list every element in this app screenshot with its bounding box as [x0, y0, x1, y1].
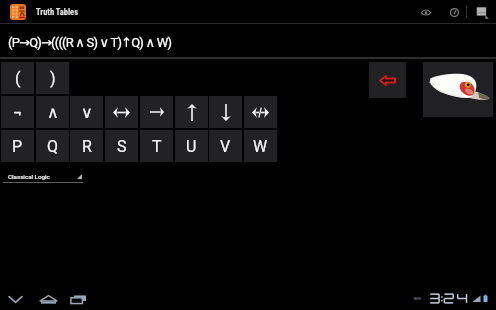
button[interactable]: Status: [413, 291, 488, 305]
button[interactable]: exclusive or: [244, 96, 277, 128]
staticText: P: [12, 137, 23, 156]
button[interactable]: S: [105, 130, 138, 162]
staticText: W: [253, 137, 268, 156]
staticText: Classical Logic: [8, 173, 50, 180]
button[interactable]: Recent apps: [66, 287, 90, 310]
button[interactable]: equivalence: [105, 96, 138, 128]
staticText: U: [186, 137, 197, 156]
button[interactable]: Home: [36, 287, 60, 310]
staticText: (P→Q)→((((R ∧ S) ∨ T)↑Q) ∧ W): [8, 35, 172, 50]
button[interactable]: ): [36, 62, 69, 94]
button[interactable]: T: [140, 130, 173, 162]
button[interactable]: (P→Q)→((((R ∧ S) ∨ T)↑Q) ∧ W): [0, 26, 278, 59]
button[interactable]: U: [175, 130, 208, 162]
button[interactable]: W: [244, 130, 277, 162]
button[interactable]: Truth Tables: [0, 0, 496, 23]
staticText: ¬: [13, 103, 22, 122]
staticText: V: [220, 137, 231, 156]
button[interactable]: History: [443, 1, 465, 23]
staticText: R: [82, 137, 92, 156]
staticText: Q: [47, 137, 59, 156]
button[interactable]: More options: [471, 1, 493, 23]
staticText: Truth Tables: [36, 7, 79, 17]
button[interactable]: Back: [3, 287, 27, 310]
staticText: T: [152, 137, 162, 156]
button[interactable]: Result image: [423, 62, 493, 117]
staticText: ∨: [81, 103, 93, 122]
button[interactable]: P: [1, 130, 34, 162]
button[interactable]: Show truth table: [415, 1, 437, 23]
button[interactable]: or: [70, 96, 103, 128]
staticText: (: [15, 69, 21, 88]
button[interactable]: (: [1, 62, 34, 94]
button[interactable]: not: [1, 96, 34, 128]
button[interactable]: nor: [209, 96, 242, 128]
button[interactable]: Q: [36, 130, 69, 162]
button[interactable]: Classical Logic: [3, 170, 83, 183]
button[interactable]: and: [36, 96, 69, 128]
staticText: ): [50, 69, 56, 88]
button[interactable]: Backspace: [369, 62, 406, 98]
button[interactable]: V: [209, 130, 242, 162]
button[interactable]: nand: [175, 96, 208, 128]
button[interactable]: R: [70, 130, 103, 162]
staticText: S: [117, 137, 127, 156]
button[interactable]: implication: [140, 96, 173, 128]
staticText: ∧: [47, 103, 59, 122]
